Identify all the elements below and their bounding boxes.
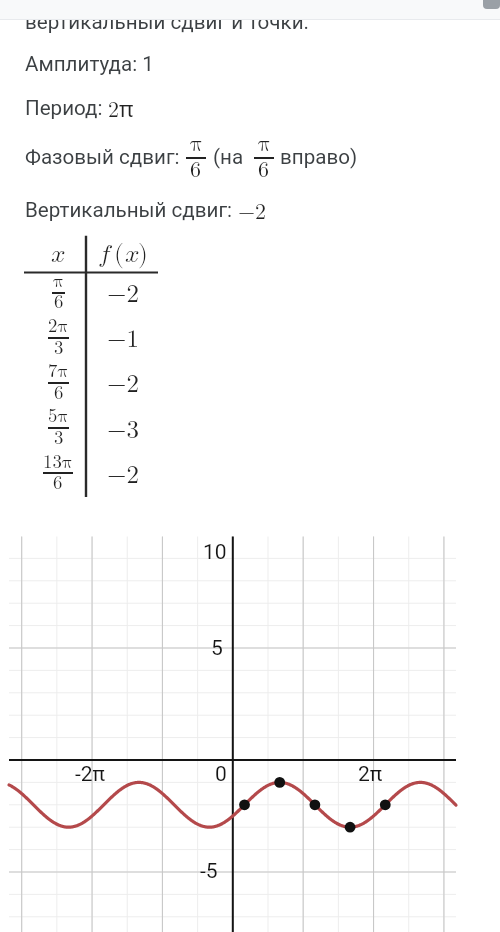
staticText: −1 (107, 327, 139, 352)
staticText: вправо) (280, 145, 358, 169)
staticText: 10 (203, 540, 227, 565)
staticText: 6 (54, 384, 64, 403)
staticText: 𝑥 (125, 241, 140, 266)
staticText: -5 (200, 859, 218, 884)
staticText: −2 (238, 194, 267, 225)
staticText: ( (114, 241, 124, 266)
staticText: -2π (75, 762, 106, 787)
staticText: Период: (25, 96, 108, 120)
staticText: 6 (190, 159, 202, 181)
staticText: ) (138, 241, 148, 266)
staticText: 3 (54, 429, 64, 448)
staticText: 6 (258, 159, 270, 181)
staticText: 6 (53, 474, 63, 493)
staticText: 3 (54, 339, 64, 358)
staticText: Амплитуда: 1 (25, 52, 154, 76)
staticText: π (53, 272, 65, 291)
staticText: −2 (107, 372, 139, 397)
button[interactable] (483, 0, 500, 9)
staticText: Вертикальный сдвиг: (25, 198, 238, 222)
staticText: 𝑓 (98, 241, 111, 266)
staticText: 2π (108, 92, 134, 123)
staticText: 13π (43, 453, 73, 472)
staticText: 2π (48, 317, 69, 336)
staticText: (на (213, 145, 244, 169)
staticText: 𝑥 (51, 241, 66, 266)
staticText: вертикальный сдвиг и точки. (25, 10, 310, 34)
staticText: 6 (54, 293, 64, 312)
staticText: Фазовый сдвиг: (25, 145, 180, 169)
staticText: π (190, 133, 203, 155)
staticText: −2 (107, 463, 139, 488)
staticText: 5 (211, 636, 223, 661)
staticText: 5π (48, 407, 69, 426)
staticText: 7π (48, 362, 69, 381)
staticText: 0 (215, 762, 227, 787)
staticText: −2 (107, 282, 139, 307)
staticText: 2π (358, 762, 383, 787)
staticText: −3 (107, 418, 139, 443)
staticText: π (258, 133, 271, 155)
